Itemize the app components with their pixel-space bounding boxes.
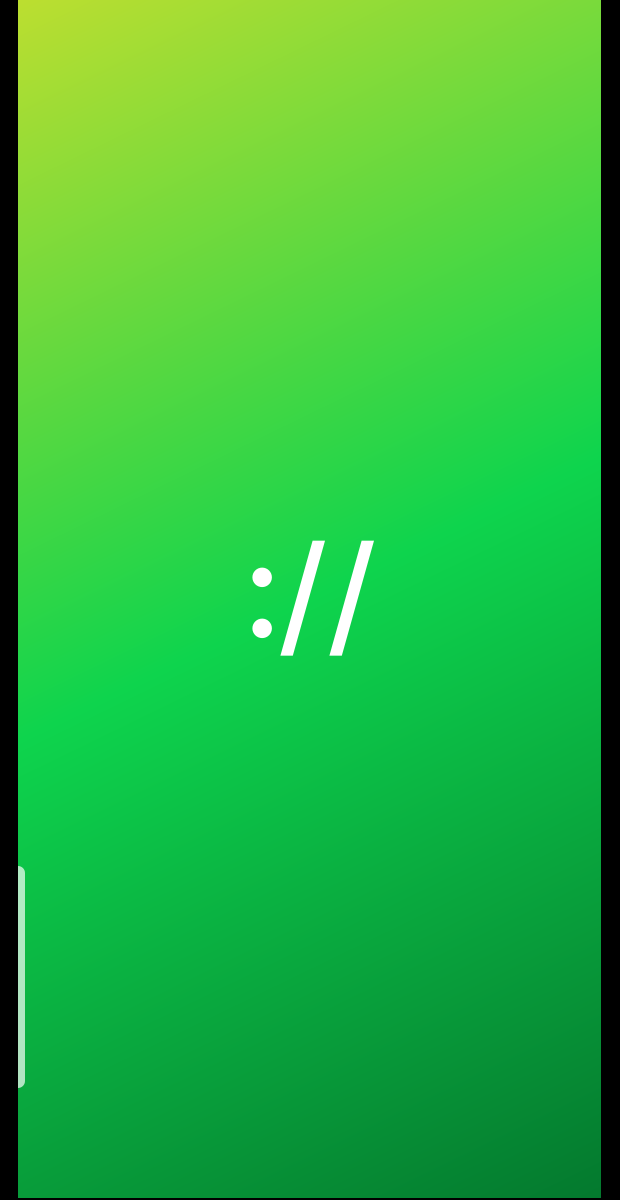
button[interactable]: Open menu bbox=[11, 866, 25, 1088]
